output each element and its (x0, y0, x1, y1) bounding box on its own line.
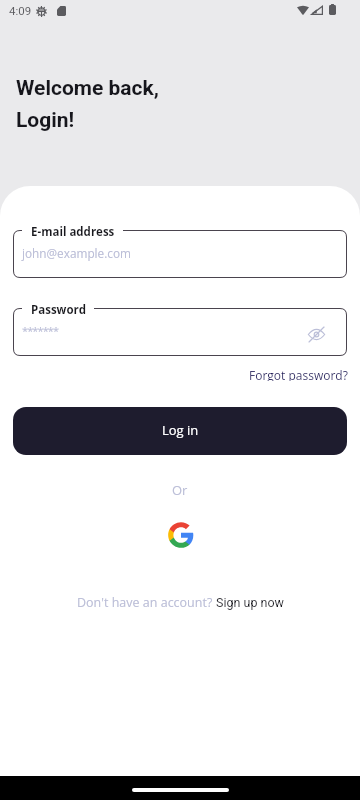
button[interactable]: Log in (13, 407, 347, 455)
staticText: Forgot password? (249, 367, 348, 381)
staticText: Log in (162, 421, 199, 439)
staticText: 4:09 (9, 4, 32, 17)
staticText: Sign up now (216, 595, 284, 610)
staticText: Don't have an account? (77, 594, 213, 611)
staticText: Password (31, 302, 87, 318)
staticText: E-mail address (31, 224, 115, 240)
staticText: john@example.com (22, 245, 131, 261)
button[interactable]: Sign in with Google (160, 515, 200, 555)
button[interactable]: Show password (301, 319, 331, 349)
staticText: Welcome back, Login! (16, 76, 159, 132)
button[interactable]: Forgot password? (237, 363, 360, 385)
button[interactable]: Sign up now (216, 595, 284, 610)
staticText: ******* (22, 323, 59, 338)
staticText: Or (172, 481, 188, 499)
